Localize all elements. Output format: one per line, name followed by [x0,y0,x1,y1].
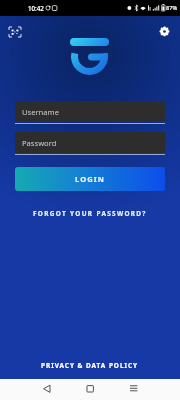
button[interactable]: Scan QR code [6,24,24,40]
staticText: Username [22,107,59,117]
staticText: LOGIN [75,174,105,184]
button[interactable]: Back [38,381,56,397]
button[interactable]: PRIVACY & DATA POLICY [0,357,180,373]
button[interactable]: Recent apps [125,381,143,397]
button[interactable]: FORGOT YOUR PASSWORD? [0,205,180,221]
button[interactable]: Settings [159,26,170,37]
button[interactable]: Username [15,101,165,122]
staticText: 10:42 [28,4,44,12]
button[interactable]: Password [15,132,165,153]
staticText: PRIVACY & DATA POLICY [41,361,139,370]
staticText: 87% [166,4,178,12]
button[interactable]: Home [82,381,98,397]
staticText: FORGOT YOUR PASSWORD? [33,209,147,218]
button[interactable]: LOGIN [15,167,165,191]
staticText: Password [22,138,57,148]
